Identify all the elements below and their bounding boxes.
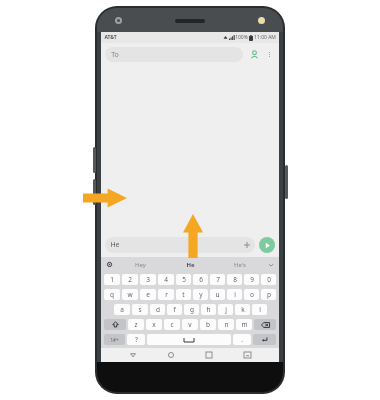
button[interactable]: Space: [147, 334, 231, 345]
staticText: b: [206, 320, 210, 329]
staticText: i: [234, 290, 236, 299]
button[interactable]: Hey: [115, 257, 165, 272]
button[interactable]: b: [200, 319, 216, 330]
button[interactable]: v: [182, 319, 198, 330]
button[interactable]: y: [193, 289, 208, 300]
staticText: v: [188, 320, 192, 329]
staticText: x: [152, 320, 156, 329]
button[interactable]: Home: [165, 349, 177, 361]
button[interactable]: Enter: [253, 334, 276, 345]
staticText: 100%: [235, 34, 248, 41]
staticText: 4: [164, 275, 168, 284]
button[interactable]: w: [122, 289, 138, 300]
button[interactable]: f: [167, 304, 182, 315]
staticText: AT&T: [104, 34, 117, 41]
button[interactable]: c: [164, 319, 180, 330]
staticText: a: [120, 305, 124, 314]
staticText: .: [241, 335, 243, 344]
button[interactable]: z: [128, 319, 144, 330]
button[interactable]: h: [201, 304, 216, 315]
button[interactable]: He: [165, 257, 215, 272]
button[interactable]: u: [210, 289, 225, 300]
button[interactable]: He: [105, 237, 255, 253]
button[interactable]: p: [261, 289, 276, 300]
button[interactable]: 3: [140, 274, 156, 285]
staticText: 7: [216, 275, 220, 284]
staticText: p: [267, 290, 271, 299]
button[interactable]: ?: [127, 334, 145, 345]
button[interactable]: Symbols: [104, 334, 125, 345]
staticText: f: [173, 305, 176, 314]
button[interactable]: a: [114, 304, 130, 315]
button[interactable]: Add contact: [247, 47, 261, 61]
staticText: 11:00 AM: [254, 34, 276, 41]
button[interactable]: k: [235, 304, 250, 315]
button[interactable]: To: [105, 47, 243, 62]
staticText: 8: [233, 275, 237, 284]
button[interactable]: o: [244, 289, 259, 300]
button[interactable]: 6: [193, 274, 208, 285]
button[interactable]: 7: [210, 274, 225, 285]
button[interactable]: g: [184, 304, 199, 315]
staticText: 1: [110, 275, 114, 284]
button[interactable]: x: [146, 319, 162, 330]
button[interactable]: Back: [127, 349, 139, 361]
staticText: y: [199, 290, 203, 299]
staticText: q: [110, 290, 114, 299]
staticText: h: [206, 305, 211, 314]
staticText: s: [138, 305, 142, 314]
staticText: e: [146, 290, 150, 299]
button[interactable]: Keyboard settings: [104, 259, 115, 270]
button[interactable]: r: [158, 289, 174, 300]
staticText: k: [241, 305, 245, 314]
staticText: 6: [199, 275, 203, 284]
staticText: u: [215, 290, 220, 299]
staticText: d: [156, 305, 160, 314]
button[interactable]: m: [236, 319, 252, 330]
staticText: 9: [250, 275, 254, 284]
staticText: He: [186, 261, 195, 269]
button[interactable]: 1: [104, 274, 120, 285]
button[interactable]: t: [176, 289, 191, 300]
button[interactable]: s: [132, 304, 148, 315]
staticText: o: [250, 290, 254, 299]
button[interactable]: j: [218, 304, 233, 315]
staticText: 1#+: [110, 337, 119, 343]
staticText: z: [134, 320, 138, 329]
button[interactable]: More options: [263, 48, 275, 60]
staticText: Hey: [135, 261, 146, 269]
button[interactable]: He's: [215, 257, 265, 272]
button[interactable]: 2: [122, 274, 138, 285]
button[interactable]: Expand suggestions: [265, 259, 276, 270]
button[interactable]: q: [104, 289, 120, 300]
button[interactable]: 0: [261, 274, 276, 285]
button[interactable]: Backspace: [254, 319, 276, 330]
staticText: w: [127, 290, 133, 299]
staticText: 2: [128, 275, 132, 284]
button[interactable]: d: [150, 304, 165, 315]
button[interactable]: Send: [259, 237, 275, 253]
staticText: t: [182, 290, 185, 299]
button[interactable]: 8: [227, 274, 242, 285]
staticText: g: [190, 305, 194, 314]
staticText: To: [111, 50, 119, 60]
button[interactable]: 9: [244, 274, 259, 285]
button[interactable]: n: [218, 319, 234, 330]
button[interactable]: Hide keyboard: [241, 349, 253, 361]
staticText: He's: [234, 261, 246, 269]
button[interactable]: e: [140, 289, 156, 300]
button[interactable]: Recents: [203, 349, 215, 361]
button[interactable]: .: [233, 334, 251, 345]
staticText: r: [165, 290, 168, 299]
staticText: j: [225, 305, 227, 314]
staticText: m: [241, 320, 248, 329]
staticText: n: [224, 320, 229, 329]
staticText: 3: [146, 275, 150, 284]
button[interactable]: l: [252, 304, 267, 315]
staticText: He: [110, 240, 120, 250]
button[interactable]: 5: [176, 274, 191, 285]
staticText: 0: [267, 275, 271, 284]
button[interactable]: Shift: [104, 319, 126, 330]
button[interactable]: i: [227, 289, 242, 300]
button[interactable]: 4: [158, 274, 174, 285]
